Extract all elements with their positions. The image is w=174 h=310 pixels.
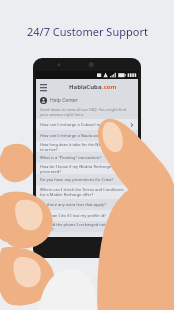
button[interactable]: What is a "Pending" transaction? (36, 152, 138, 163)
staticText: .com (102, 83, 117, 91)
staticText: Send down to view all our FAQ. You might… (40, 107, 134, 117)
staticText: Why did the phone I recharged not receiv… (40, 222, 128, 232)
button[interactable]: How can I recharge a Nauta account? (36, 130, 138, 141)
staticText: How can I recharge a Cubacel number? (40, 122, 128, 127)
staticText: Do you have any promotions for Cuba? (40, 177, 128, 182)
button[interactable]: How do I know if my Nbdcla Recharge was … (36, 163, 138, 174)
button[interactable]: How long does it take for the Nbdcla Rec… (36, 141, 138, 152)
staticText: What is a "Pending" transaction? (40, 155, 128, 160)
button[interactable]: Do you have any promotions for Cuba? (36, 174, 138, 185)
staticText: How can I recharge a Nauta account? (40, 133, 128, 138)
button[interactable]: I'm there any extra fees that apply? (36, 199, 138, 210)
staticText: How long does it take for the Nbdcla Rec… (40, 142, 128, 152)
staticText: What can I do if I lost my profile id? (40, 213, 128, 218)
button[interactable]: Why did the phone I recharged not receiv… (36, 221, 138, 232)
button[interactable]: What can I do if I lost my profile id? (36, 210, 138, 221)
staticText: HablaCuba (69, 83, 102, 91)
staticText: Where can I check the Terms and Conditio… (40, 187, 128, 197)
staticText: 24/7 Customer Support (27, 24, 148, 39)
staticText: How do I know if my Nbdcla Recharge was … (40, 164, 128, 174)
button[interactable]: Where can I check the Terms and Conditio… (36, 185, 138, 199)
button[interactable]: How can I recharge a Cubacel number? (36, 119, 138, 130)
staticText: Help Center (50, 97, 78, 104)
staticText: I'm there any extra fees that apply? (40, 202, 128, 207)
button[interactable]: Open navigation menu (36, 80, 50, 94)
